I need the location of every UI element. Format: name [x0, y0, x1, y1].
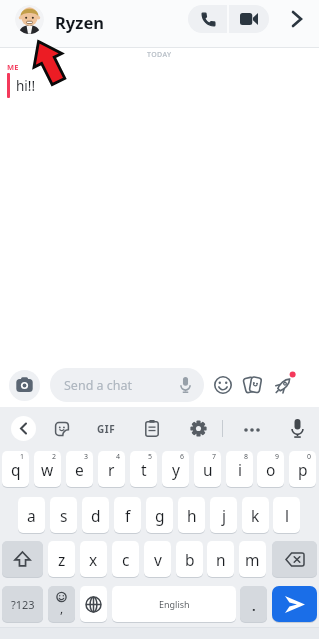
staticText: n [216, 549, 226, 570]
staticText: z [58, 549, 66, 570]
staticText: h [187, 505, 197, 526]
button[interactable]: z [48, 541, 75, 577]
staticText: o [266, 459, 276, 480]
button[interactable] [188, 5, 269, 33]
staticText: , [60, 600, 64, 616]
staticText: 8 [244, 452, 249, 462]
button[interactable]: u [194, 451, 221, 487]
button[interactable]: . [240, 586, 267, 622]
staticText: Ryzen [55, 11, 104, 33]
staticText: 6 [180, 452, 185, 462]
staticText: l [285, 505, 289, 526]
button[interactable] [80, 586, 107, 622]
button[interactable]: o [257, 451, 284, 487]
staticText: u [203, 459, 213, 480]
button[interactable]: g [146, 497, 173, 533]
button[interactable]: t [130, 451, 157, 487]
staticText: s [60, 505, 68, 526]
staticText: v [154, 549, 162, 570]
button[interactable] [15, 5, 44, 34]
button[interactable]: a [18, 497, 45, 533]
button[interactable]: j [210, 497, 237, 533]
button[interactable]: GIF [92, 420, 120, 437]
button[interactable] [290, 11, 304, 27]
staticText: GIF [97, 422, 116, 436]
staticText: r [108, 459, 115, 480]
staticText: hi!! [16, 77, 36, 95]
button[interactable]: b [176, 541, 203, 577]
button[interactable]: p [289, 451, 316, 487]
button[interactable]: Send a chat [50, 368, 204, 402]
button[interactable]: k [242, 497, 269, 533]
button[interactable] [272, 541, 317, 577]
staticText: y [172, 459, 180, 480]
staticText: p [298, 459, 308, 480]
staticText: f [125, 505, 131, 526]
staticText: ?123 [11, 597, 35, 612]
button[interactable]: y [162, 451, 189, 487]
staticText: ME [7, 62, 19, 72]
staticText: 0 [307, 452, 312, 462]
staticText: x [89, 549, 98, 570]
button[interactable]: English [112, 586, 236, 622]
staticText: 1 [20, 452, 25, 462]
staticText: e [75, 459, 84, 480]
button[interactable]: q [2, 451, 29, 487]
staticText: m [245, 549, 260, 570]
staticText: 4 [116, 452, 121, 462]
button[interactable]: v [144, 541, 171, 577]
button[interactable]: n [207, 541, 234, 577]
staticText: w [41, 459, 54, 480]
staticText: 9 [275, 452, 280, 462]
button[interactable] [2, 541, 43, 577]
staticText: Send a chat [64, 377, 133, 394]
staticText: q [11, 459, 21, 480]
staticText: TODAY [147, 50, 172, 60]
button[interactable]: h [178, 497, 205, 533]
button[interactable]: w [34, 451, 61, 487]
button[interactable]: r [98, 451, 125, 487]
button[interactable]: e [66, 451, 93, 487]
button[interactable]: ?123 [2, 586, 43, 622]
staticText: a [27, 505, 36, 526]
button[interactable] [243, 375, 263, 395]
button[interactable]: d [82, 497, 109, 533]
button[interactable]: x [80, 541, 107, 577]
staticText: 2 [52, 452, 57, 462]
button[interactable]: s [50, 497, 77, 533]
button[interactable] [54, 421, 70, 437]
button[interactable]: m [239, 541, 266, 577]
button[interactable] [9, 370, 40, 401]
button[interactable] [214, 376, 232, 394]
staticText: i [238, 459, 242, 480]
staticText: t [141, 459, 147, 480]
staticText: d [91, 505, 101, 526]
staticText: 3 [84, 452, 89, 462]
staticText: 7 [212, 452, 217, 462]
staticText: English [159, 598, 190, 610]
button[interactable] [11, 416, 36, 441]
button[interactable]: , [48, 586, 75, 622]
button[interactable]: c [112, 541, 139, 577]
button[interactable] [291, 419, 304, 438]
staticText: k [251, 505, 260, 526]
button[interactable] [272, 372, 296, 396]
staticText: c [122, 549, 130, 570]
button[interactable] [272, 586, 317, 622]
staticText: 5 [148, 452, 153, 462]
button[interactable]: f [114, 497, 141, 533]
staticText: j [222, 505, 226, 526]
staticText: b [185, 549, 195, 570]
staticText: g [155, 505, 165, 526]
button[interactable]: l [273, 497, 300, 533]
button[interactable] [145, 420, 159, 437]
button[interactable] [243, 421, 261, 439]
staticText: . [252, 597, 256, 615]
button[interactable]: i [226, 451, 253, 487]
button[interactable] [190, 420, 207, 437]
